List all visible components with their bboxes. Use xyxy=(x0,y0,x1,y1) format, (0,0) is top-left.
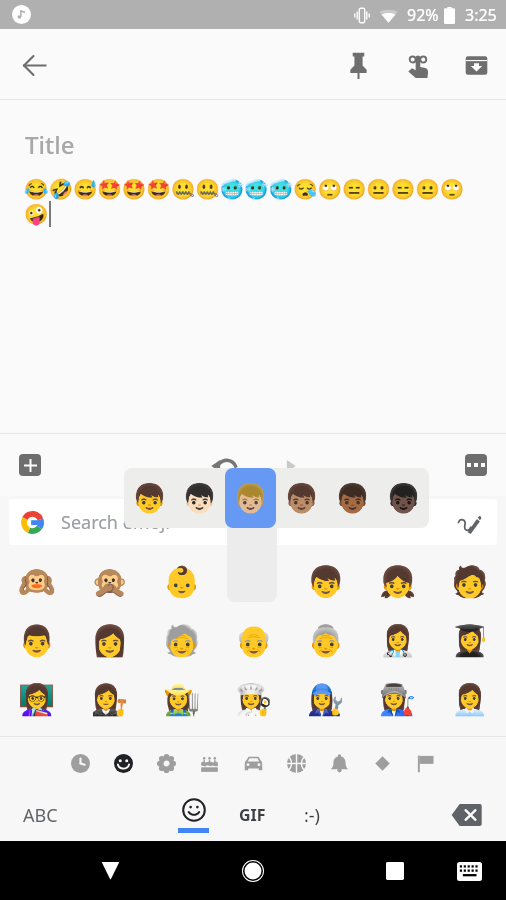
button[interactable]: people xyxy=(194,748,224,778)
button[interactable]: Reminder xyxy=(393,41,441,89)
staticText: 👩‍🏫 xyxy=(18,682,56,717)
staticText: 😂🤣😅🤩🤩🤩🤐🤐🥶🥶🥶😪🙄😑😐😑😐🙄 xyxy=(24,178,465,201)
staticText: 🙊 xyxy=(91,564,129,599)
staticText: 👩 xyxy=(91,623,129,658)
button[interactable]: 🧑 xyxy=(434,552,506,611)
staticText: ABC xyxy=(23,803,58,828)
button[interactable]: 👦🏻 xyxy=(174,468,225,528)
button[interactable]: 👴 xyxy=(218,611,290,670)
button[interactable]: 👩‍⚖️ xyxy=(73,670,146,729)
button[interactable]: 👵 xyxy=(290,611,362,670)
button[interactable]: 👩‍🔧 xyxy=(290,670,362,729)
button[interactable]: Switch keyboard xyxy=(447,849,491,893)
staticText: 👦🏿 xyxy=(386,482,421,515)
button[interactable]: smile xyxy=(108,748,138,778)
staticText: 3:25 xyxy=(465,4,497,26)
button[interactable]: 🧓 xyxy=(146,611,218,670)
button[interactable]: car xyxy=(238,748,268,778)
button[interactable]: ball xyxy=(281,748,311,778)
button[interactable]: flag xyxy=(410,748,440,778)
button[interactable]: 👦🏼 xyxy=(225,468,276,528)
button[interactable]: 🙉 xyxy=(0,552,73,611)
staticText: 🤪 xyxy=(24,203,49,226)
button[interactable]: flower xyxy=(151,748,181,778)
staticText: 👩‍🎓 xyxy=(451,623,489,658)
button[interactable]: Home xyxy=(231,849,275,893)
button[interactable]: Add xyxy=(19,454,41,476)
button[interactable]: 👩‍⚕️ xyxy=(362,611,434,670)
button[interactable]: 👩‍🏫 xyxy=(0,670,73,729)
staticText: 👩‍⚕️ xyxy=(379,623,417,658)
staticText: 👦🏻 xyxy=(182,482,217,515)
button[interactable]: 👩‍🍳 xyxy=(218,670,290,729)
staticText: 👦🏼 xyxy=(233,482,268,515)
button[interactable]: 👩 xyxy=(73,611,146,670)
button[interactable]: Emoji xyxy=(167,792,219,838)
staticText: Title xyxy=(25,128,75,161)
staticText: GIF xyxy=(239,804,266,826)
button[interactable]: GIF xyxy=(226,792,278,838)
button[interactable]: 👦🏿 xyxy=(378,468,429,528)
button[interactable]: 👧 xyxy=(362,552,434,611)
button[interactable]: 👶 xyxy=(146,552,218,611)
button[interactable]: ABC xyxy=(0,792,80,838)
button[interactable]: Recents xyxy=(373,849,417,893)
staticText: 👩‍🍳 xyxy=(235,682,273,717)
button[interactable]: 👦 xyxy=(124,468,174,528)
button[interactable]: Pin xyxy=(334,41,382,89)
button[interactable]: Redo xyxy=(266,448,300,482)
staticText: 👩‍💼 xyxy=(451,682,489,717)
staticText: 👨 xyxy=(18,623,56,658)
button[interactable]: Back xyxy=(88,849,132,893)
staticText: 👴 xyxy=(235,623,273,658)
staticText: 👩‍🏭 xyxy=(379,682,417,717)
button[interactable]: Back xyxy=(10,41,58,89)
button[interactable]: Undo xyxy=(207,448,241,482)
staticText: 👦 xyxy=(132,482,167,515)
staticText: 🧓 xyxy=(163,623,201,658)
button[interactable]: clock xyxy=(65,748,95,778)
staticText: 92% xyxy=(407,4,439,26)
button[interactable]: diamond xyxy=(367,748,397,778)
staticText: 👶 xyxy=(163,564,201,599)
button[interactable]: 👩‍🎓 xyxy=(434,611,506,670)
button[interactable]: bell xyxy=(324,748,354,778)
staticText: 👵 xyxy=(307,623,345,658)
button[interactable]: Archive xyxy=(452,41,500,89)
button[interactable]: More options xyxy=(465,454,487,476)
staticText: 👩‍⚖️ xyxy=(91,682,129,717)
button[interactable]: 🧒 xyxy=(218,552,290,611)
staticText: 👦🏾 xyxy=(335,482,370,515)
button[interactable]: :-) xyxy=(286,792,338,838)
staticText: 👩‍🔧 xyxy=(307,682,345,717)
button[interactable]: Backspace xyxy=(444,793,488,837)
button[interactable]: 👦 xyxy=(290,552,362,611)
staticText: 👩‍🌾 xyxy=(163,682,201,717)
button[interactable]: 🙊 xyxy=(73,552,146,611)
button[interactable]: 👨 xyxy=(0,611,73,670)
staticText: 🧑 xyxy=(451,564,489,599)
button[interactable]: 👦🏾 xyxy=(327,468,378,528)
button[interactable]: 👩‍💼 xyxy=(434,670,506,729)
staticText: Search emoji xyxy=(61,510,170,535)
button[interactable]: 👦🏽 xyxy=(276,468,327,528)
staticText: 👦 xyxy=(307,564,345,599)
staticText: :-) xyxy=(304,803,321,828)
button[interactable]: 👩‍🏭 xyxy=(362,670,434,729)
staticText: 👦🏽 xyxy=(284,482,319,515)
staticText: 👧 xyxy=(379,564,417,599)
button[interactable]: Search emoji xyxy=(9,499,497,545)
staticText: 🙉 xyxy=(18,564,56,599)
button[interactable]: 👩‍🌾 xyxy=(146,670,218,729)
